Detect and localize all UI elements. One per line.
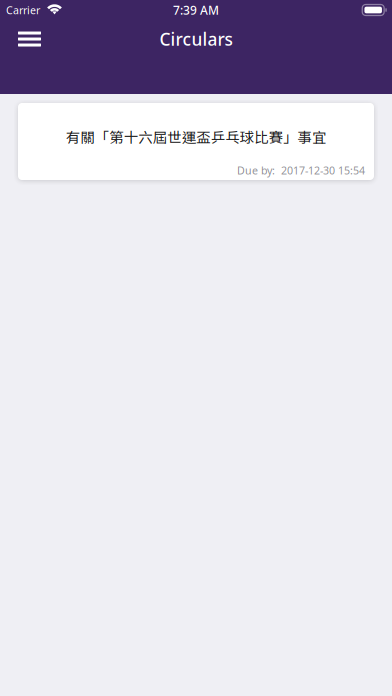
staticText: 7:39 AM: [173, 2, 219, 18]
button[interactable]: 有關「第十六屆世運盃乒乓球比賽」事宜: [18, 103, 374, 180]
staticText: Due by: 2017-12-30 15:54: [237, 163, 365, 177]
button[interactable]: Menu: [9, 19, 50, 59]
staticText: 有關「第十六屆世運盃乒乓球比賽」事宜: [66, 126, 326, 147]
staticText: Carrier: [6, 3, 40, 17]
staticText: Circulars: [159, 27, 232, 50]
